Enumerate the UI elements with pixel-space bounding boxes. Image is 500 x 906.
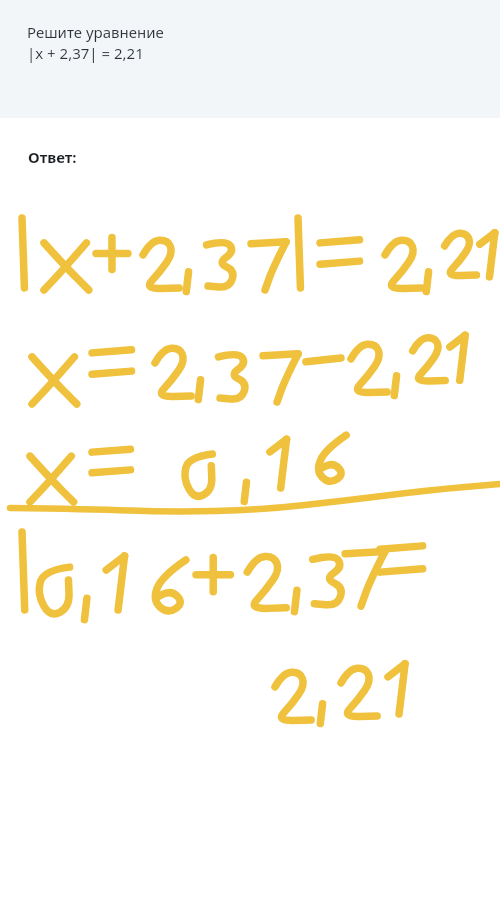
staticText: Ответ: [28,147,77,167]
button[interactable]: Решите уравнение [0,0,500,118]
staticText: |x + 2,37| = 2,21 [27,43,144,63]
staticText: Решите уравнение [27,22,164,43]
other: Рукописное решение уравнения [0,0,500,906]
